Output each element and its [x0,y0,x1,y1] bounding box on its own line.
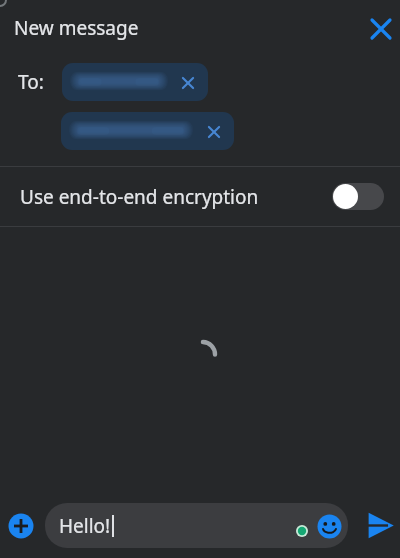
staticText: Hello! [59,513,111,539]
button[interactable]: Close [366,14,395,43]
button[interactable]: Add attachment [4,509,37,542]
button[interactable]: Send [363,508,397,542]
button[interactable] [61,112,234,150]
button[interactable] [62,63,208,101]
button[interactable]: Emoji [316,513,342,539]
staticText: New message [14,15,139,41]
button[interactable]: Hello! [45,503,348,548]
staticText: To: [18,69,44,95]
staticText: Use end-to-end encryption [20,184,259,210]
button[interactable]: Use end-to-end encryption [0,167,400,226]
